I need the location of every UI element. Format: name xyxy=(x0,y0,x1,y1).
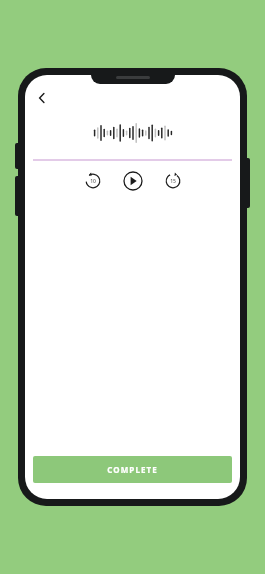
button[interactable]: Back xyxy=(31,87,53,109)
staticText: 15 xyxy=(170,178,176,185)
button[interactable]: Rewind 10 seconds xyxy=(85,173,101,189)
button[interactable]: Forward 15 seconds xyxy=(165,173,181,189)
button[interactable]: Play xyxy=(123,171,143,191)
staticText: 10 xyxy=(90,178,96,185)
staticText: COMPLETE xyxy=(107,464,158,475)
button[interactable]: COMPLETE xyxy=(33,456,232,483)
